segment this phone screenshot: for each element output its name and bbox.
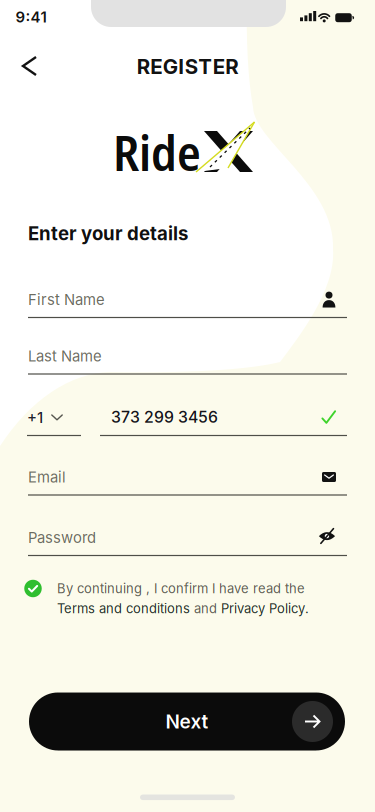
- button[interactable]: Privacy Policy.: [221, 601, 309, 616]
- staticText: Last Name: [28, 347, 102, 365]
- staticText: Password: [28, 528, 96, 546]
- button[interactable]: Password: [28, 517, 347, 557]
- staticText: First Name: [28, 290, 105, 308]
- staticText: +1: [27, 408, 43, 426]
- staticText: Email: [28, 468, 66, 486]
- staticText: Terms and conditions: [57, 601, 190, 616]
- staticText: Privacy Policy.: [221, 601, 309, 616]
- staticText: and: [190, 601, 221, 616]
- button[interactable]: Accept terms: [24, 580, 42, 597]
- button[interactable]: Back: [7, 45, 51, 87]
- button[interactable]: Email: [28, 457, 347, 497]
- staticText: Ride: [113, 119, 201, 185]
- button[interactable]: Terms and conditions: [57, 601, 190, 616]
- staticText: REGISTER: [137, 54, 238, 79]
- button[interactable]: First Name: [28, 279, 347, 319]
- button[interactable]: Next: [29, 692, 345, 750]
- staticText: Next: [165, 710, 208, 733]
- staticText: 373 299 3456: [111, 407, 218, 426]
- staticText: 9:41: [15, 8, 46, 26]
- button[interactable]: 373 299 3456: [100, 397, 347, 437]
- button[interactable]: Last Name: [28, 336, 347, 376]
- button[interactable]: Country code: [27, 398, 81, 436]
- button[interactable]: Show password: [312, 521, 342, 551]
- staticText: By continuing , I confirm I have read th…: [57, 581, 305, 596]
- staticText: Enter your details: [28, 222, 188, 245]
